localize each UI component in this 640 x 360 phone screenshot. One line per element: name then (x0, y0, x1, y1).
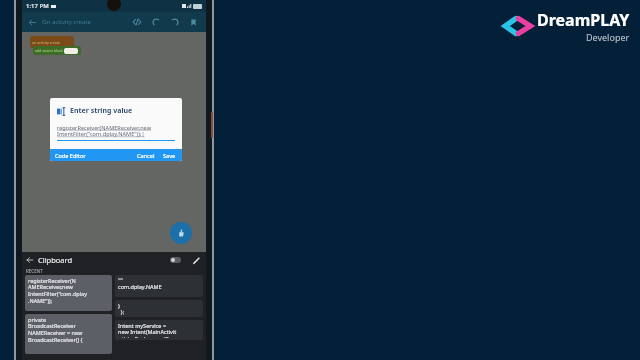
staticText: Cancel (137, 152, 155, 159)
button[interactable]: Redo (165, 12, 184, 32)
button[interactable]: Back (22, 12, 42, 32)
staticText: Code Editor (55, 152, 86, 159)
staticText: Save (163, 152, 176, 159)
button[interactable]: Code (127, 12, 146, 32)
staticText: ) }; (118, 302, 125, 315)
staticText: Clipboard (38, 255, 73, 265)
staticText: DreamPLAY (537, 9, 630, 31)
staticText: com.dplay.NAME (118, 283, 162, 290)
button[interactable]: registerReceiver(N AMEReceiver,new Inten… (25, 275, 112, 311)
button[interactable]: Undo (146, 12, 165, 32)
staticText: private BroadcastReceiver NAMEReceiver =… (28, 316, 83, 344)
button[interactable]: private BroadcastReceiver NAMEReceiver =… (25, 314, 112, 354)
staticText: Enter string value (70, 106, 133, 116)
staticText: registerReceiver(NAMEReceiver,new Intent… (57, 124, 152, 138)
button[interactable]: on activity create (30, 36, 74, 48)
button[interactable]: Cancel (133, 149, 159, 161)
staticText: RECENT (26, 268, 43, 274)
button[interactable]: ) }; (115, 300, 203, 317)
button[interactable]: Save (184, 12, 203, 32)
staticText: Intent myService = new Intent(MainActivi… (118, 322, 177, 338)
button[interactable]: add source block (33, 46, 81, 55)
staticText: registerReceiver(N AMEReceiver,new Inten… (28, 277, 88, 305)
button[interactable]: com.dplay.NAME (115, 275, 203, 297)
staticText: On activity create (42, 18, 91, 26)
button[interactable]: Save (159, 149, 182, 161)
button[interactable]: Code Editor (50, 149, 91, 161)
staticText: Developer (586, 31, 630, 43)
staticText: on activity create (32, 40, 60, 45)
staticText: 1:17 PM (26, 2, 49, 10)
staticText: add source block (35, 48, 63, 53)
button[interactable]: Back (22, 252, 38, 268)
button[interactable]: Toggle clipboard (166, 257, 185, 263)
button[interactable]: Run (170, 222, 192, 244)
button[interactable]: Edit (188, 252, 204, 268)
button[interactable]: Intent myService = new Intent(MainActivi… (115, 320, 203, 340)
